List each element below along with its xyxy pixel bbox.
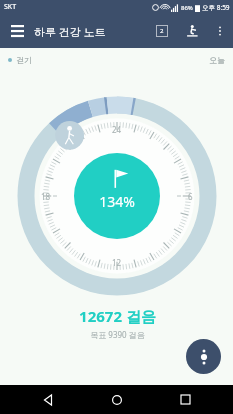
button[interactable]: 오늘 (209, 55, 225, 65)
button[interactable]: Daily step progress 134 percent (17, 96, 217, 296)
button[interactable]: 걷기 (8, 55, 32, 65)
button[interactable]: Recent apps (165, 385, 205, 414)
staticText: 134% (99, 192, 135, 211)
button[interactable]: Menu (0, 14, 34, 48)
staticText: 86% (181, 4, 193, 12)
button[interactable]: Notes (147, 16, 177, 46)
staticText: SKT (4, 2, 17, 12)
button[interactable]: Home (97, 385, 137, 414)
staticText: 12672 걸음 (79, 306, 156, 326)
staticText: 하루 건강 노트 (34, 24, 147, 39)
button[interactable]: Back (28, 385, 68, 414)
staticText: 오늘 (209, 55, 225, 65)
staticText: 목표 9390 걸음 (90, 329, 145, 340)
staticText: 오후 8:59 (202, 3, 230, 12)
staticText: 걷기 (16, 55, 32, 65)
staticText: 6 (188, 191, 193, 202)
button[interactable]: Activity (177, 16, 207, 46)
staticText: 24 (112, 124, 122, 135)
button[interactable]: More options (186, 339, 221, 374)
staticText: 18 (41, 191, 51, 202)
staticText: 12 (112, 257, 122, 268)
staticText: 2 (160, 27, 164, 35)
button[interactable]: More options (207, 18, 233, 44)
